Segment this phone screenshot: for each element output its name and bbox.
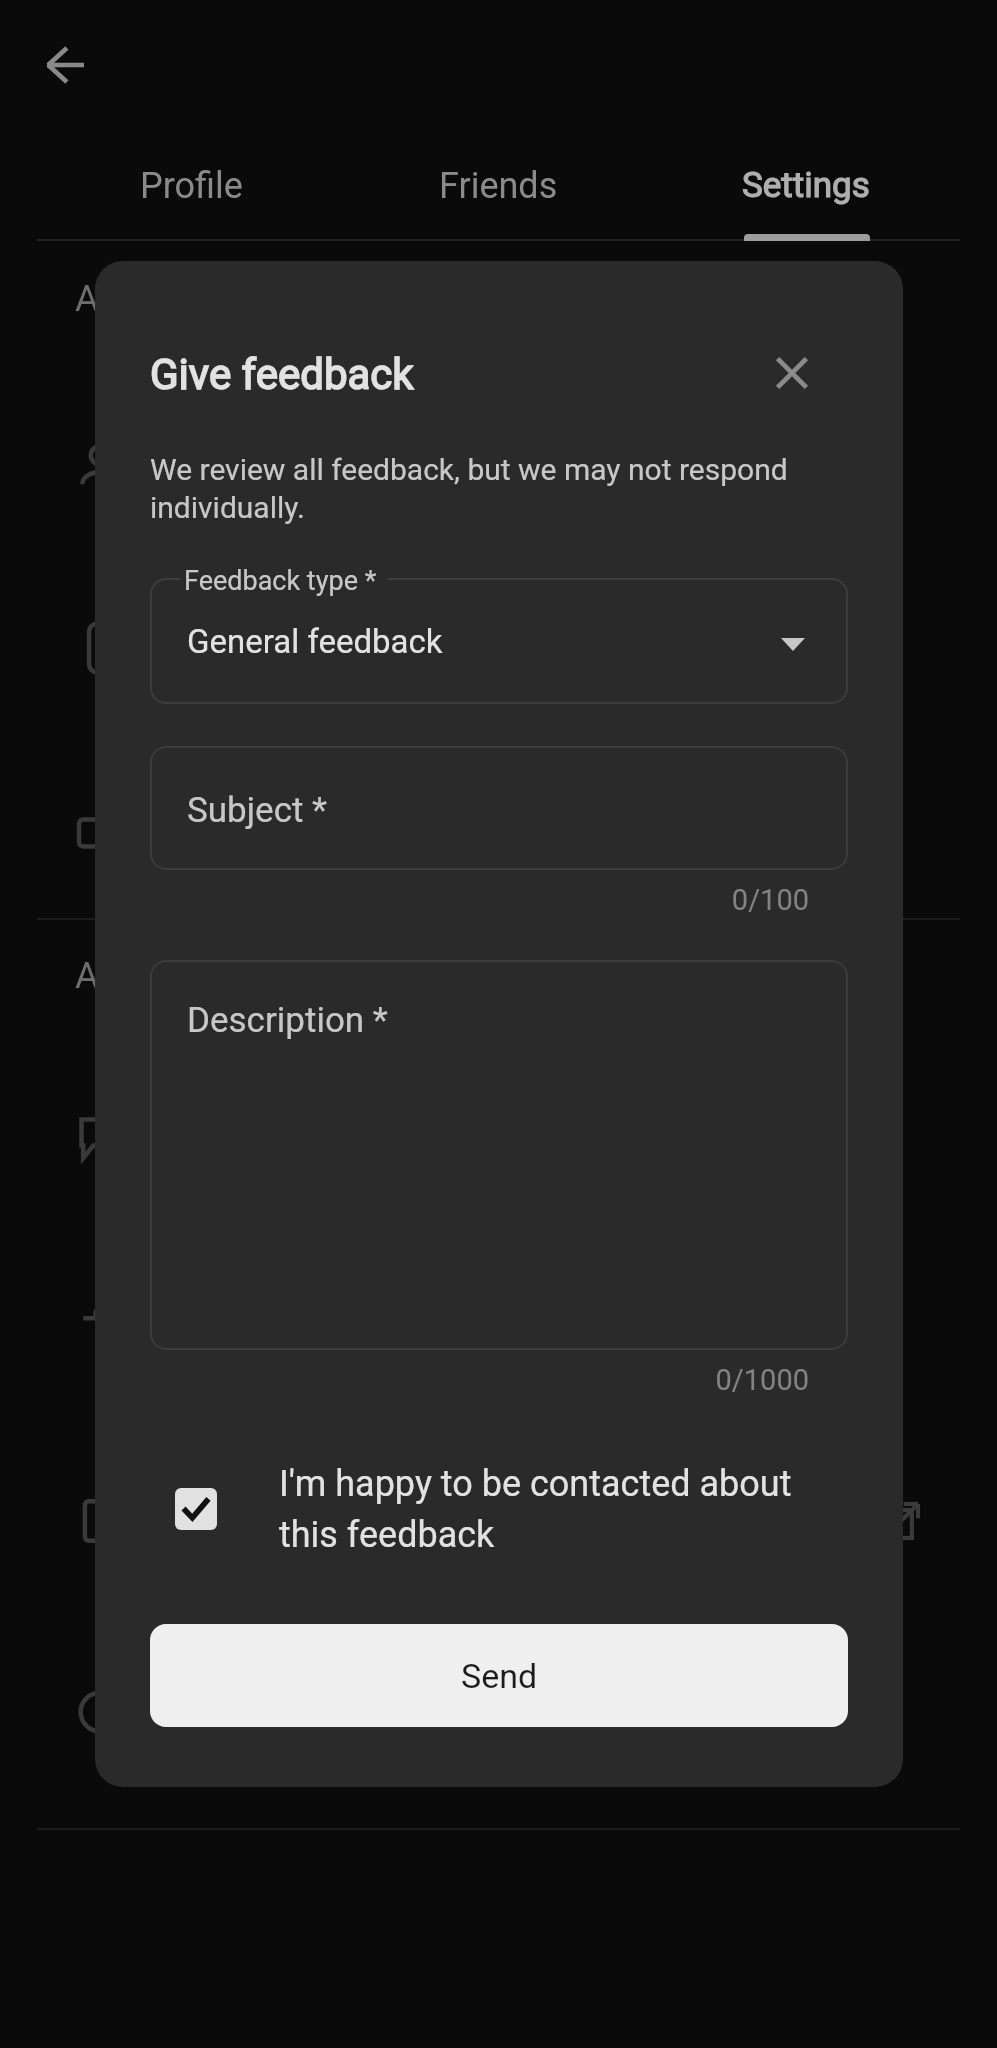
staticText: General feedback <box>187 622 443 661</box>
button[interactable]: Open source licences <box>0 1249 997 1411</box>
staticText: About <box>75 955 171 997</box>
staticText: 1.4.2 (318) <box>169 1720 305 1753</box>
button[interactable]: Email <box>0 752 997 914</box>
staticText: Read the terms <box>169 1529 358 1562</box>
staticText: Phone number <box>169 608 377 646</box>
staticText: Description * <box>187 1000 388 1041</box>
staticText: 0/1000 <box>150 1363 809 1397</box>
staticText: Profile <box>140 165 243 207</box>
staticText: Email <box>169 793 249 831</box>
staticText: Alex Morgan <box>169 473 326 506</box>
button[interactable]: I'm happy to be contacted about this fee… <box>150 1436 848 1581</box>
button[interactable]: Close <box>764 345 820 401</box>
button[interactable]: Back <box>23 23 107 107</box>
button[interactable] <box>150 578 848 704</box>
staticText: Feedback type * <box>184 565 377 597</box>
button[interactable]: App version <box>0 1631 997 1793</box>
staticText: We review all feedback, but we may not r… <box>150 452 818 525</box>
button[interactable]: Subject * <box>150 746 848 870</box>
button[interactable]: Friends <box>345 130 652 241</box>
staticText: Friends <box>439 165 558 207</box>
staticText: 0/100 <box>150 883 809 917</box>
staticText: Terms of service <box>169 1481 406 1519</box>
button[interactable]: Name <box>0 384 997 546</box>
staticText: I'm happy to be contacted about this fee… <box>279 1463 799 1555</box>
staticText: Give feedback <box>150 350 414 399</box>
button[interactable]: Profile <box>38 130 345 241</box>
button[interactable]: Settings <box>652 130 959 241</box>
button[interactable]: Terms of service <box>0 1440 997 1602</box>
staticText: alex@example.com <box>169 841 414 874</box>
button[interactable]: Phone number <box>0 567 997 729</box>
staticText: Account <box>75 278 209 320</box>
staticText: Name <box>169 425 255 463</box>
staticText: Settings <box>742 165 870 206</box>
button[interactable]: Send feedback <box>0 1057 997 1219</box>
staticText: Send <box>461 1656 538 1696</box>
staticText: Subject * <box>187 790 328 831</box>
button[interactable]: Send <box>150 1624 848 1727</box>
staticText: Third party libraries <box>169 1338 410 1371</box>
button[interactable]: Description * <box>150 960 848 1350</box>
